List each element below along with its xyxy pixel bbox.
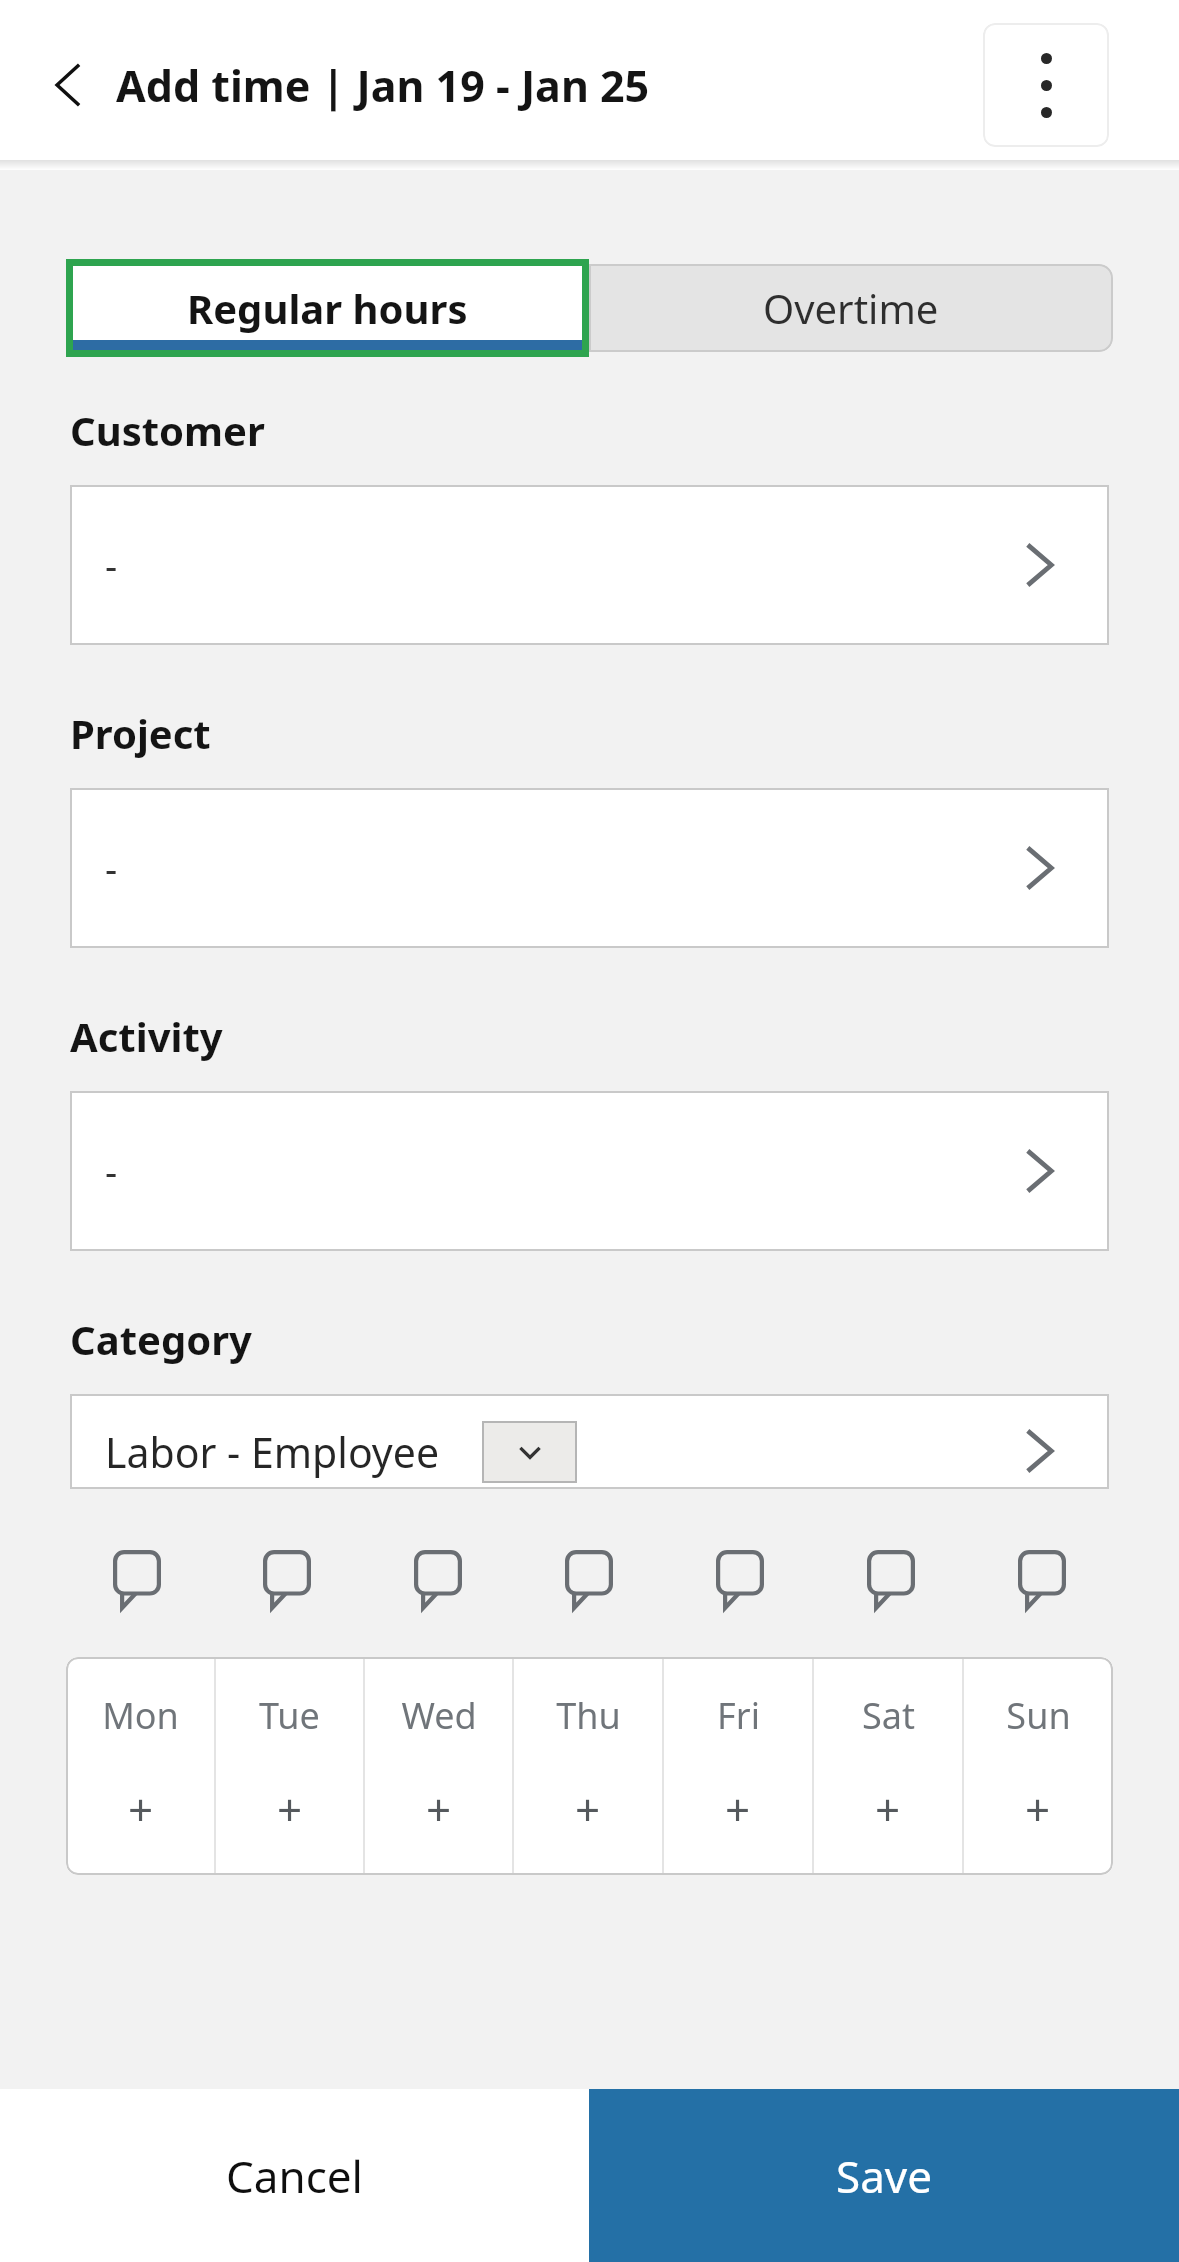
button[interactable]: Sun: [963, 1657, 1113, 1875]
button[interactable]: Save: [589, 2089, 1179, 2262]
button[interactable]: Regular hours: [73, 266, 582, 350]
staticText: +: [426, 1779, 452, 1839]
button[interactable]: [482, 1421, 577, 1483]
button[interactable]: Thu: [513, 1657, 663, 1875]
staticText: -: [105, 1145, 118, 1197]
button[interactable]: Sat: [813, 1657, 963, 1875]
button[interactable]: Mon: [66, 1657, 215, 1875]
button[interactable]: Tue: [215, 1657, 364, 1875]
staticText: Cancel: [226, 2146, 363, 2206]
staticText: +: [575, 1779, 601, 1839]
button[interactable]: Comment: [62, 1537, 212, 1623]
button[interactable]: Cancel: [0, 2089, 589, 2262]
staticText: Labor - Employee: [105, 1424, 440, 1480]
button[interactable]: -: [70, 485, 1109, 645]
button[interactable]: Comment: [966, 1537, 1117, 1623]
button[interactable]: Back: [40, 56, 98, 114]
staticText: Thu: [556, 1691, 621, 1740]
button[interactable]: Labor - Employee: [70, 1394, 1109, 1489]
button[interactable]: -: [70, 1091, 1109, 1251]
staticText: +: [128, 1779, 154, 1839]
staticText: Activity: [70, 1009, 223, 1063]
staticText: Fri: [717, 1691, 760, 1740]
button[interactable]: Comment: [212, 1537, 362, 1623]
button[interactable]: Overtime: [589, 264, 1113, 352]
staticText: Customer: [70, 403, 265, 457]
staticText: Sun: [1006, 1691, 1071, 1740]
staticText: +: [277, 1779, 303, 1839]
staticText: Wed: [401, 1691, 477, 1740]
staticText: -: [105, 842, 118, 894]
staticText: Project: [70, 706, 211, 760]
staticText: Mon: [102, 1691, 179, 1740]
staticText: Overtime: [763, 281, 939, 335]
button[interactable]: -: [70, 788, 1109, 948]
staticText: +: [725, 1779, 751, 1839]
button[interactable]: Wed: [364, 1657, 513, 1875]
staticText: Regular hours: [187, 281, 468, 335]
staticText: Add time | Jan 19 - Jan 25: [116, 56, 650, 115]
staticText: Category: [70, 1312, 252, 1366]
staticText: +: [1025, 1779, 1051, 1839]
staticText: -: [105, 539, 118, 591]
button[interactable]: Comment: [513, 1537, 664, 1623]
staticText: +: [875, 1779, 901, 1839]
staticText: Sat: [862, 1691, 915, 1740]
staticText: Save: [836, 2146, 933, 2206]
button[interactable]: Comment: [664, 1537, 815, 1623]
button[interactable]: Fri: [663, 1657, 813, 1875]
button[interactable]: Comment: [362, 1537, 513, 1623]
button[interactable]: More options: [983, 23, 1109, 147]
button[interactable]: Comment: [815, 1537, 966, 1623]
staticText: Tue: [259, 1691, 320, 1740]
